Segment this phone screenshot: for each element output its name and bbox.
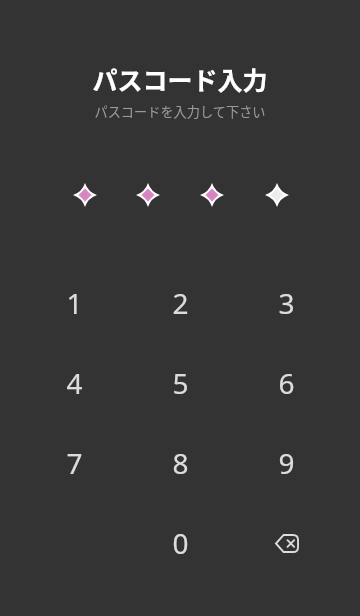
button[interactable]: 1 <box>34 271 114 335</box>
staticText: 6 <box>278 364 295 402</box>
button[interactable]: 5 <box>140 351 220 415</box>
button[interactable]: 2 <box>140 271 220 335</box>
staticText: 5 <box>172 364 189 402</box>
button[interactable]: 6 <box>246 351 326 415</box>
staticText: 8 <box>172 444 189 482</box>
button[interactable]: 3 <box>246 271 326 335</box>
staticText: 0 <box>172 524 189 562</box>
staticText: 1 <box>66 284 83 322</box>
button[interactable]: Backspace <box>246 511 326 575</box>
staticText: 3 <box>278 284 295 322</box>
staticText: 4 <box>66 364 83 402</box>
staticText: 7 <box>66 444 83 482</box>
button[interactable]: 7 <box>34 431 114 495</box>
staticText: パスコード入力 <box>92 61 268 97</box>
button[interactable]: 8 <box>140 431 220 495</box>
button[interactable]: 9 <box>246 431 326 495</box>
staticText: パスコードを入力して下さい <box>94 102 266 121</box>
staticText: 2 <box>172 284 189 322</box>
staticText: 9 <box>278 444 295 482</box>
button[interactable]: 0 <box>140 511 220 575</box>
button[interactable]: 4 <box>34 351 114 415</box>
